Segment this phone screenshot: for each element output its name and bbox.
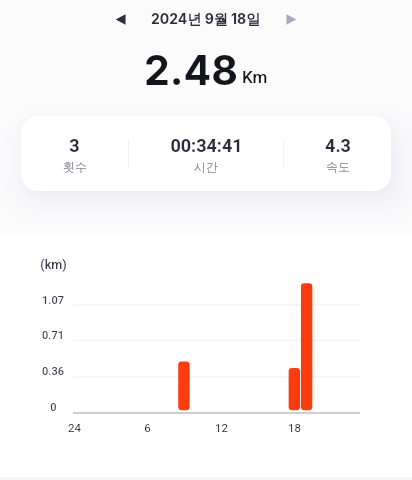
staticText: (km): [40, 257, 67, 272]
staticText: 24: [68, 421, 81, 434]
button[interactable]: 4.3: [284, 116, 391, 191]
staticText: 0.36: [42, 365, 64, 378]
staticText: 4.3: [325, 135, 351, 156]
staticText: 12: [215, 421, 228, 434]
staticText: 0.71: [42, 329, 64, 342]
button[interactable]: Next day: [276, 4, 306, 34]
staticText: 속도: [326, 159, 350, 174]
button[interactable]: Previous day: [106, 4, 136, 34]
staticText: 3: [69, 135, 80, 156]
staticText: 18: [288, 421, 301, 434]
staticText: 시간: [194, 159, 218, 174]
staticText: 0: [50, 401, 57, 414]
staticText: 1.07: [42, 294, 64, 307]
button[interactable]: 00:34:41: [129, 116, 283, 191]
staticText: 2024년 9월 18일: [151, 10, 261, 28]
staticText: Km: [242, 67, 268, 87]
staticText: 6: [144, 421, 151, 434]
staticText: 00:34:41: [170, 135, 243, 156]
staticText: 횟수: [63, 159, 87, 174]
button[interactable]: 3: [21, 116, 128, 191]
staticText: 2.48: [144, 45, 238, 91]
